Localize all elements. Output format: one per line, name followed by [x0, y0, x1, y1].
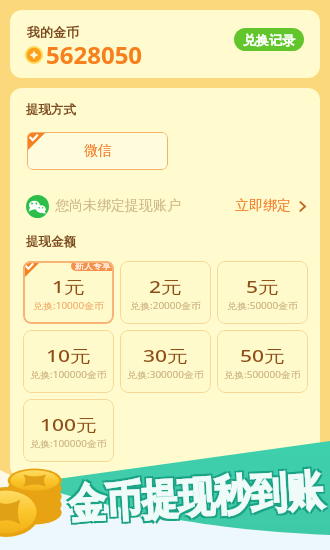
- button[interactable]: 30元: [120, 330, 211, 393]
- staticText: 1元: [52, 275, 86, 298]
- staticText: 5628050: [46, 38, 143, 71]
- staticText: 2元: [149, 275, 183, 298]
- staticText: 立即绑定: [235, 197, 291, 215]
- staticText: 我的金币: [27, 24, 79, 40]
- staticText: 兑换:50000金币: [227, 299, 299, 311]
- staticText: 兑换:10000金币: [33, 299, 105, 311]
- staticText: 兑换:300000金币: [127, 368, 204, 380]
- staticText: 金币提现秒到账: [66, 462, 323, 530]
- staticText: 10元: [46, 344, 92, 367]
- button[interactable]: 微信: [27, 132, 168, 170]
- staticText: 兑换:20000金币: [130, 299, 202, 311]
- staticText: 兑换:100000金币: [30, 368, 107, 380]
- staticText: 30元: [143, 344, 189, 367]
- staticText: 50元: [240, 344, 286, 367]
- button[interactable]: 5元: [217, 261, 308, 324]
- staticText: 金币提现秒到账: [69, 462, 326, 530]
- staticText: 100元: [40, 413, 98, 436]
- button[interactable]: 100元: [23, 399, 114, 462]
- staticText: 新人专享: [75, 262, 111, 270]
- button[interactable]: 兑换记录: [234, 28, 304, 51]
- staticText: 微信: [84, 142, 112, 160]
- staticText: 金币提现秒到账: [67, 464, 325, 532]
- button[interactable]: 10元: [23, 330, 114, 393]
- staticText: 兑换:500000金币: [224, 368, 301, 380]
- button[interactable]: 50元: [217, 330, 308, 393]
- staticText: 提现方式: [26, 102, 76, 118]
- staticText: 提现金额: [26, 234, 76, 250]
- staticText: 您尚未绑定提现账户: [55, 197, 181, 215]
- staticText: 5元: [246, 275, 280, 298]
- staticText: 兑换:100000金币: [30, 437, 107, 449]
- other: Bind now: [296, 200, 309, 213]
- button[interactable]: 您尚未绑定提现账户: [26, 194, 309, 218]
- staticText: 兑换记录: [243, 32, 295, 48]
- button[interactable]: 1元: [23, 261, 114, 324]
- staticText: 金币提现秒到账: [69, 466, 326, 534]
- staticText: 金币提现秒到账: [66, 466, 323, 534]
- button[interactable]: 2元: [120, 261, 211, 324]
